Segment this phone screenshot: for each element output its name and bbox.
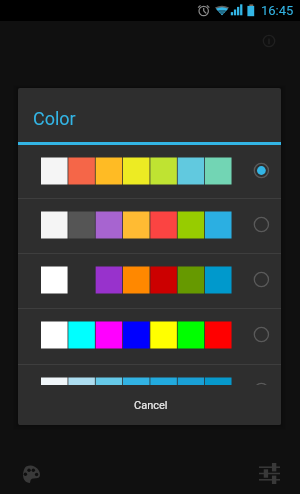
button[interactable] (18, 365, 281, 385)
staticText: Color (33, 108, 76, 129)
staticText: 16:45 (261, 3, 294, 18)
button[interactable]: Settings (255, 459, 284, 488)
button[interactable] (18, 254, 281, 308)
button[interactable] (18, 199, 281, 253)
button[interactable] (18, 145, 281, 198)
button[interactable]: Cancel (19, 385, 281, 425)
button[interactable]: Info (254, 26, 283, 55)
button[interactable] (18, 309, 281, 364)
button[interactable]: Palette (16, 459, 45, 488)
staticText: Cancel (134, 399, 168, 412)
